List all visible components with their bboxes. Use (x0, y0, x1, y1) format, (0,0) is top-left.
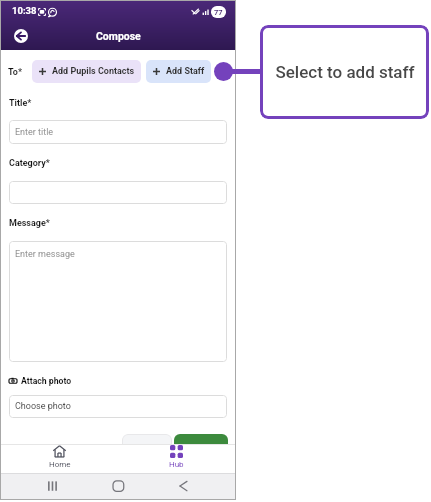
staticText: Choose photo (15, 401, 71, 412)
button[interactable]: Add Pupils Contacts (32, 60, 141, 83)
staticText: 77 (214, 8, 223, 17)
button[interactable] (9, 181, 227, 204)
button[interactable]: Enter message (9, 241, 227, 362)
staticText: Message* (9, 218, 50, 229)
button[interactable] (174, 434, 228, 456)
staticText: Compose (96, 30, 141, 42)
button[interactable]: Home (111, 479, 125, 493)
staticText: Home (49, 460, 71, 469)
staticText: 10:38 (12, 5, 37, 16)
staticText: Add Staff (166, 66, 205, 77)
staticText: Hub (169, 460, 184, 469)
staticText: Enter message (15, 249, 75, 260)
staticText: Category* (9, 158, 50, 169)
button[interactable]: Back (14, 29, 28, 43)
button[interactable]: Add Staff (146, 60, 211, 83)
button[interactable]: Enter title (9, 120, 227, 144)
staticText: Attach photo (21, 376, 72, 386)
staticText: Add Pupils Contacts (52, 66, 135, 77)
staticText: To* (8, 67, 22, 78)
button[interactable]: Choose photo (9, 395, 227, 418)
button[interactable]: Home (1, 444, 118, 471)
staticText: Select to add staff (275, 62, 415, 82)
button[interactable] (122, 434, 172, 456)
button[interactable]: Recents (46, 479, 60, 493)
button[interactable]: Back (178, 479, 192, 493)
button[interactable]: Hub (118, 444, 235, 471)
staticText: Enter title (15, 127, 54, 138)
staticText: Title* (9, 98, 32, 109)
